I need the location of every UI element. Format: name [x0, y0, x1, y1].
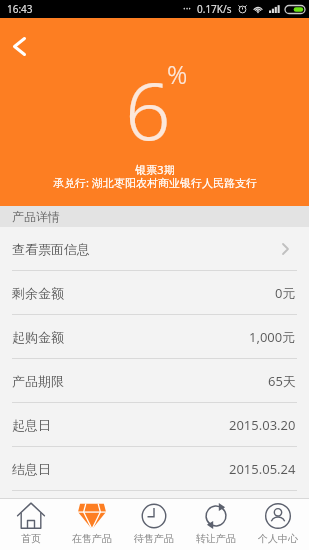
staticText: 起购金额: [12, 329, 64, 345]
staticText: 0元: [275, 284, 296, 302]
staticText: 转让产品: [196, 532, 236, 545]
staticText: 剩余金额: [12, 285, 64, 301]
staticText: 承兑行: 湖北枣阳农村商业银行人民路支行: [53, 175, 257, 190]
button[interactable]: 查看票面信息: [0, 227, 309, 271]
staticText: 结息日: [12, 461, 51, 477]
staticText: 0.17K/s: [197, 2, 232, 16]
staticText: %: [167, 57, 188, 91]
staticText: ···: [183, 1, 192, 15]
staticText: 在售产品: [72, 532, 112, 545]
button[interactable]: 转让产品: [185, 499, 247, 545]
button[interactable]: 首页: [0, 499, 61, 545]
staticText: 银票3期: [135, 162, 175, 177]
button[interactable]: 剩余金额: [0, 271, 309, 315]
staticText: 产品详情: [12, 209, 60, 224]
staticText: 查看票面信息: [12, 241, 90, 257]
staticText: 2015.03.20: [229, 416, 296, 434]
button[interactable]: 在售产品: [61, 499, 123, 545]
staticText: 2015.05.24: [229, 460, 296, 478]
button[interactable]: 产品期限: [0, 359, 309, 403]
staticText: 产品期限: [12, 373, 64, 389]
staticText: 6: [125, 54, 171, 163]
staticText: 起息日: [12, 417, 51, 433]
staticText: 1,000元: [249, 328, 296, 346]
button[interactable]: 起息日: [0, 403, 309, 447]
staticText: 65天: [268, 372, 296, 390]
staticText: 首页: [21, 532, 41, 545]
button[interactable]: 待售产品: [123, 499, 185, 545]
button[interactable]: 起购金额: [0, 315, 309, 359]
staticText: 个人中心: [258, 532, 298, 545]
button[interactable]: 个人中心: [247, 499, 309, 545]
staticText: 16:43: [7, 2, 33, 16]
button[interactable]: Back: [2, 24, 38, 60]
button[interactable]: 结息日: [0, 447, 309, 491]
staticText: 待售产品: [134, 532, 174, 545]
